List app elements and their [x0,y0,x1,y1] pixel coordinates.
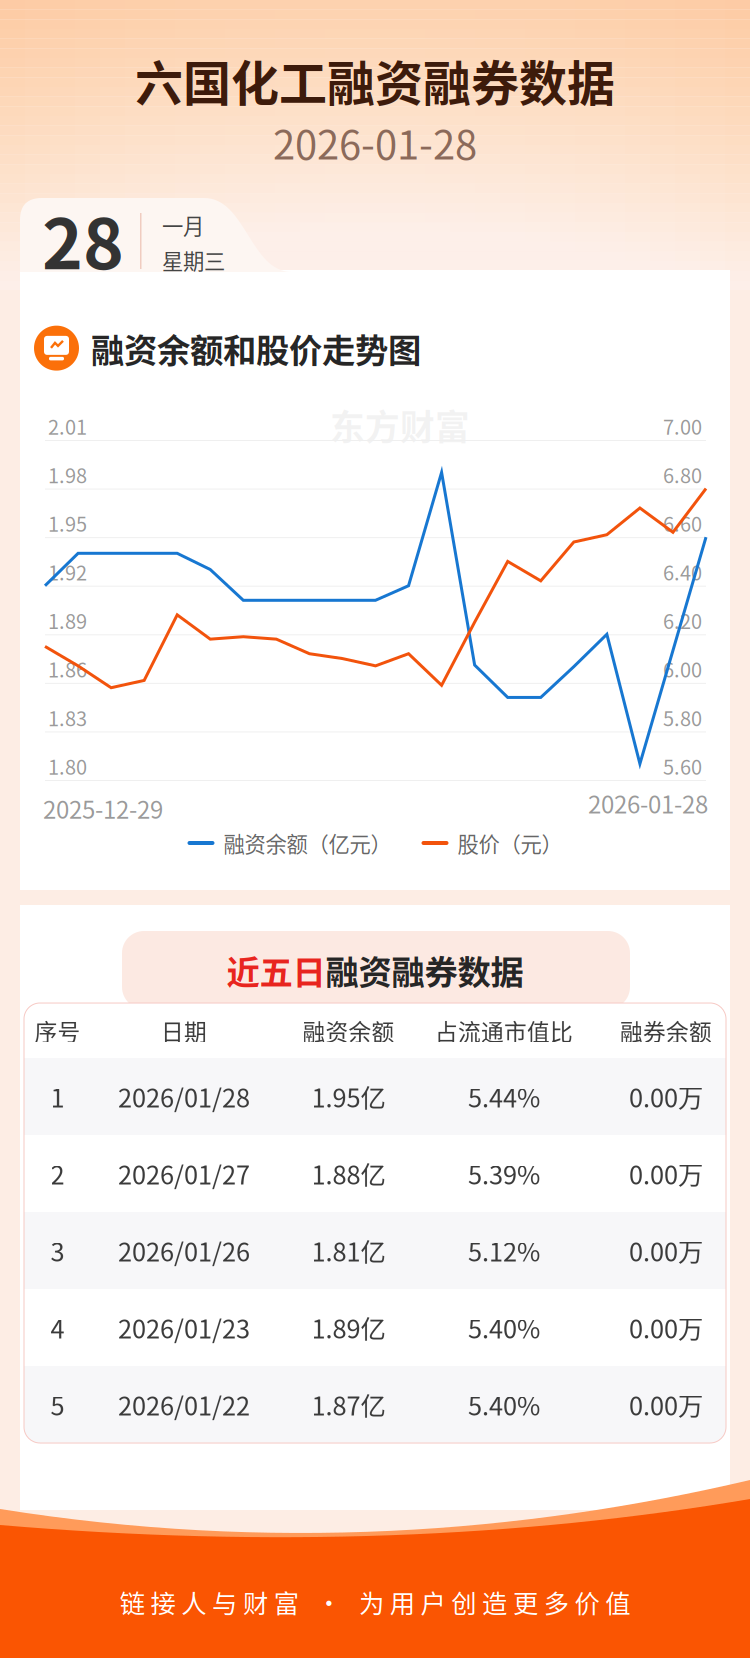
staticText: 1.95亿 [311,1078,385,1115]
staticText: 1.83 [48,703,87,732]
staticText: 5.40% [468,1309,540,1346]
staticText: 1.80 [48,751,87,780]
staticText: 链接人与财富 · 为用户创造更多价值 [120,1584,630,1620]
staticText: 1.88亿 [311,1155,385,1192]
staticText: 1.95 [48,509,87,538]
staticText: 7.00 [663,411,702,440]
staticText: 1.81亿 [311,1232,385,1269]
staticText: 一月 [162,210,204,240]
staticText: 融资余额 [302,1014,394,1047]
staticText: 星期三 [162,245,225,275]
staticText: 融券余额 [620,1014,712,1047]
staticText: 融资余额（亿元） [223,828,391,858]
staticText: 2026-01-28 [273,113,477,171]
staticText: 6.40 [663,557,702,586]
staticText: 日期 [161,1014,207,1047]
staticText: 5.12% [468,1232,540,1269]
staticText: 0.00万 [629,1309,703,1346]
staticText: 1.92 [48,557,87,586]
staticText: 6.00 [663,654,702,683]
staticText: 6.60 [663,509,702,538]
staticText: 5.80 [663,703,702,732]
staticText: 1.98 [48,460,87,489]
staticText: 28 [42,189,124,289]
staticText: 1.89亿 [311,1309,385,1346]
staticText: 0.00万 [629,1386,703,1423]
staticText: 2026/01/26 [118,1232,250,1269]
staticText: 东方财富 [330,400,470,450]
staticText: 1.89 [48,606,87,635]
staticText: 2026/01/28 [118,1078,250,1115]
staticText: 0.00万 [629,1078,703,1115]
staticText: 近五日 [226,946,325,994]
staticText: 1.87亿 [311,1386,385,1423]
staticText: 2.01 [48,411,87,440]
staticText: 股价（元） [457,828,562,858]
staticText: 3 [50,1232,64,1269]
staticText: 5.60 [663,751,702,780]
staticText: 0.00万 [629,1232,703,1269]
staticText: 5 [50,1386,64,1423]
staticText: 2026/01/27 [118,1155,250,1192]
staticText: 5.39% [468,1155,540,1192]
staticText: 4 [50,1309,64,1346]
staticText: 2 [50,1155,64,1192]
staticText: 5.44% [468,1078,540,1115]
staticText: 融资余额和股价走势图 [91,324,421,372]
staticText: 2026/01/23 [118,1309,250,1346]
staticText: 1 [50,1078,64,1115]
staticText: 2025-12-29 [43,791,163,826]
staticText: 2026-01-28 [588,786,708,820]
staticText: 2026/01/22 [118,1386,250,1423]
staticText: 序号 [34,1014,80,1047]
staticText: 6.20 [663,606,702,635]
staticText: 6.80 [663,460,702,489]
staticText: 六国化工融资融券数据 [135,45,615,115]
staticText: 5.40% [468,1386,540,1423]
staticText: 1.86 [48,654,87,683]
staticText: 融资融券数据 [325,946,523,994]
staticText: 0.00万 [629,1155,703,1192]
staticText: 占流通市值比 [435,1014,573,1047]
